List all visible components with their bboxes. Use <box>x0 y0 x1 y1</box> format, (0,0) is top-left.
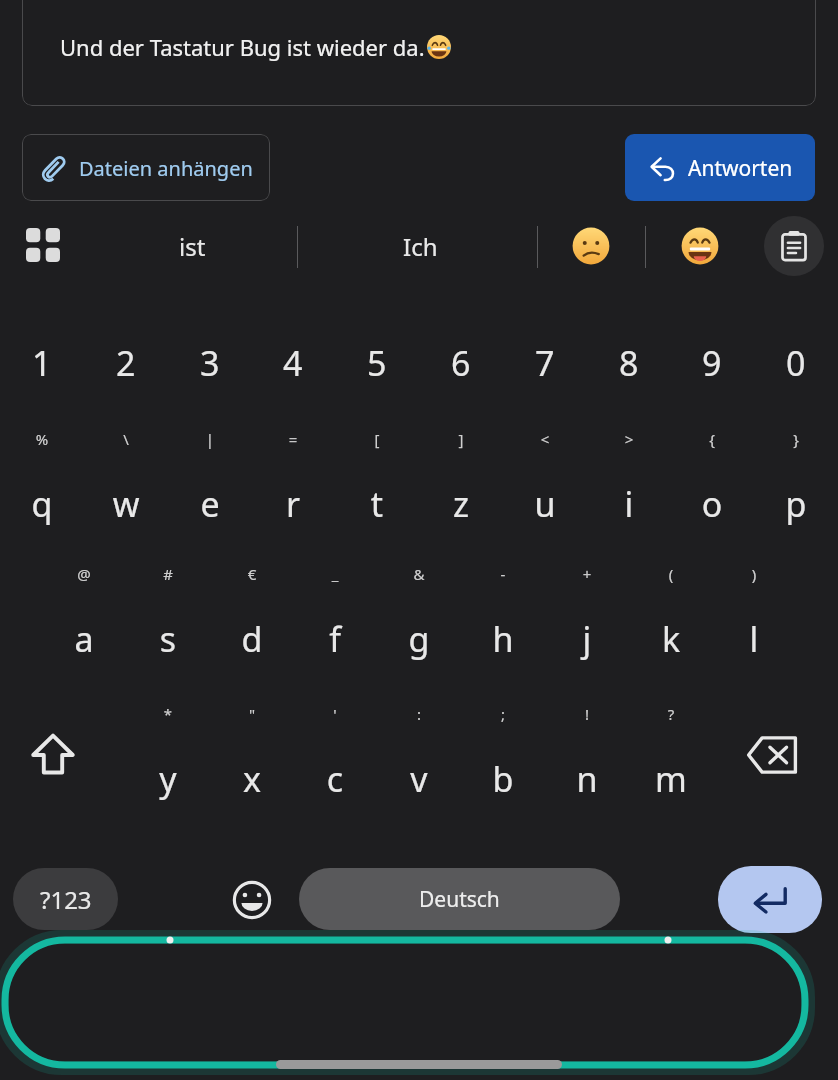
button[interactable]: ] <box>419 425 503 535</box>
staticText: " <box>210 704 294 724</box>
button[interactable]: 0 <box>754 310 838 415</box>
button[interactable]: \ <box>84 425 168 535</box>
staticText: 5 <box>367 340 387 386</box>
button[interactable]: Shift <box>10 700 95 810</box>
staticText: Und der Tastatur Bug ist wieder da. <box>60 32 425 62</box>
button[interactable]: 5 <box>335 310 419 415</box>
staticText: l <box>712 616 796 662</box>
button[interactable]: 3 <box>168 310 252 415</box>
button[interactable]: Ich <box>330 212 510 280</box>
button[interactable]: = <box>251 425 335 535</box>
staticText: € <box>210 564 294 584</box>
button[interactable]: & <box>377 560 461 670</box>
button[interactable]: + <box>545 560 629 670</box>
staticText: t <box>335 481 419 527</box>
staticText: < <box>503 429 587 449</box>
button[interactable]: 9 <box>670 310 754 415</box>
staticText: 1 <box>32 340 52 386</box>
staticText: ] <box>419 429 503 449</box>
button[interactable]: Keyboard tools <box>13 215 73 275</box>
staticText: > <box>587 429 671 449</box>
button[interactable]: 4 <box>251 310 335 415</box>
button[interactable]: ; <box>461 700 545 810</box>
button[interactable]: # <box>126 560 210 670</box>
button[interactable]: | <box>168 425 252 535</box>
staticText: h <box>461 616 545 662</box>
staticText: % <box>0 429 84 449</box>
staticText: i <box>587 481 671 527</box>
staticText: g <box>377 616 461 662</box>
staticText: ist <box>179 230 206 263</box>
staticText: ? <box>629 704 713 724</box>
button[interactable]: @ <box>42 560 126 670</box>
staticText: # <box>126 564 210 584</box>
staticText: ?123 <box>40 883 92 916</box>
button[interactable]: 1 <box>0 310 84 415</box>
staticText: n <box>545 756 629 802</box>
button[interactable]: } <box>754 425 838 535</box>
button[interactable]: [ <box>335 425 419 535</box>
staticText: * <box>126 704 210 724</box>
button[interactable]: 2 <box>84 310 168 415</box>
button[interactable]: ) <box>712 560 796 670</box>
button[interactable]: _ <box>293 560 377 670</box>
staticText: 7 <box>535 340 555 386</box>
button[interactable]: ?123 <box>13 868 118 930</box>
button[interactable]: * <box>126 700 210 810</box>
staticText: - <box>461 564 545 584</box>
button[interactable]: % <box>0 425 84 535</box>
staticText: Ich <box>403 230 438 263</box>
staticText: \ <box>84 429 168 449</box>
button[interactable]: 7 <box>503 310 587 415</box>
staticText: @ <box>42 564 126 584</box>
button[interactable]: Enter <box>718 866 822 933</box>
button[interactable]: Dateien anhängen <box>22 134 270 201</box>
staticText: k <box>629 616 713 662</box>
button[interactable]: { <box>670 425 754 535</box>
button[interactable]: ( <box>629 560 713 670</box>
button[interactable]: Backspace <box>727 700 817 810</box>
button[interactable]: Deutsch <box>299 868 620 930</box>
staticText: Dateien anhängen <box>79 155 253 182</box>
staticText: 4 <box>283 340 303 386</box>
button[interactable]: Clipboard <box>764 216 824 276</box>
staticText: ; <box>461 704 545 724</box>
button[interactable]: Confused face emoji <box>556 212 626 280</box>
staticText: w <box>84 481 168 527</box>
button[interactable]: € <box>210 560 294 670</box>
staticText: z <box>419 481 503 527</box>
staticText: 0 <box>786 340 806 386</box>
staticText: 9 <box>702 340 722 386</box>
button[interactable]: " <box>210 700 294 810</box>
staticText: f <box>293 616 377 662</box>
button[interactable]: ist <box>100 212 285 280</box>
staticText: j <box>545 616 629 662</box>
staticText: b <box>461 756 545 802</box>
staticText: v <box>377 756 461 802</box>
staticText: : <box>377 704 461 724</box>
button[interactable]: - <box>461 560 545 670</box>
button[interactable]: : <box>377 700 461 810</box>
staticText: 3 <box>200 340 220 386</box>
staticText: = <box>251 429 335 449</box>
button[interactable]: Grinning face emoji <box>665 212 735 280</box>
staticText: s <box>126 616 210 662</box>
button[interactable]: 6 <box>419 310 503 415</box>
button[interactable]: Emoji <box>222 870 282 930</box>
staticText: ( <box>629 564 713 584</box>
staticText: d <box>210 616 294 662</box>
staticText: ) <box>712 564 796 584</box>
button[interactable]: < <box>503 425 587 535</box>
button[interactable]: ? <box>629 700 713 810</box>
staticText: Deutsch <box>419 885 500 914</box>
staticText: o <box>670 481 754 527</box>
button[interactable]: ' <box>293 700 377 810</box>
staticText: | <box>168 429 252 449</box>
button[interactable]: Und der Tastatur Bug ist wieder da. <box>22 0 816 106</box>
button[interactable]: ! <box>545 700 629 810</box>
button[interactable]: Antworten <box>625 134 815 201</box>
button[interactable]: > <box>587 425 671 535</box>
button[interactable]: 8 <box>587 310 671 415</box>
staticText: x <box>210 756 294 802</box>
staticText: m <box>629 756 713 802</box>
